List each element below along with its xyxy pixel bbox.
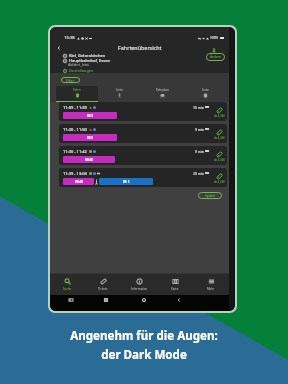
staticText: Linie [116,88,123,92]
button[interactable]: 11:30 - 11:42 [59,146,227,165]
staticText: RE 1 [123,180,130,184]
staticText: Abfahrt, Jetzt [68,62,89,67]
staticText: 11:20 - 11:50 [63,127,87,131]
staticText: 11:39 - 13:04 [63,171,87,175]
staticText: Fahrtenübersicht [118,44,162,51]
staticText: 9 min [195,127,204,131]
staticText: Angenehm für die Augen: [70,328,218,344]
staticText: 100% [210,36,219,40]
button[interactable]: Ändern [206,53,225,61]
button[interactable]: Einstellungen [63,68,94,73]
staticText: 15:38 [64,35,75,41]
staticText: Tickets [98,287,108,291]
button[interactable]: Karte [157,278,193,295]
staticText: 11:30 - 11:42 [63,149,87,153]
button[interactable]: 11:20 - 11:50 [59,124,227,143]
staticText: Information [131,287,148,291]
button[interactable]: Später [198,192,222,199]
button[interactable]: 11:09 - 11:39 [59,102,227,121]
staticText: ab 4,34€ [214,136,225,140]
staticText: RB40 [75,180,83,184]
button[interactable]: Linie [98,86,141,102]
staticText: 11:09 - 11:39 [63,105,87,109]
button[interactable]: Filter [61,77,80,83]
button[interactable]: Information [121,278,157,295]
staticText: der Dark Mode [101,347,187,363]
button[interactable]: Kiel, Gelsenkirchen [63,53,106,58]
staticText: ab 4,34€ [214,114,225,118]
button[interactable]: Hauptbahnhof, Essen [63,58,110,63]
staticText: Fahrt [73,88,81,92]
button[interactable]: Fahrplan [141,86,184,102]
button[interactable]: Suche [50,278,85,295]
staticText: ab 4,34€ [214,180,225,184]
staticText: 20 min [193,171,204,175]
staticText: Karte [171,287,179,291]
button[interactable]: Back [54,43,63,52]
button[interactable]: Fahrt [56,86,98,102]
button[interactable]: Liste [184,86,227,102]
staticText: ab 4,34€ [214,158,225,162]
staticText: Einstellungen [69,68,94,73]
staticText: Filter [66,78,75,83]
staticText: Fahrplan [156,88,169,92]
staticText: RE2 [87,114,93,118]
staticText: Kiel, Gelsenkirchen [69,53,106,58]
staticText: 16 min [193,105,204,109]
button[interactable]: Mehr [193,278,229,295]
staticText: RE2 [87,136,93,140]
staticText: RB40 [85,158,93,162]
staticText: Liste [202,88,209,92]
staticText: Suche [63,287,72,291]
staticText: Später [205,193,216,198]
button[interactable]: Download [210,46,217,53]
button[interactable]: 11:39 - 13:04 [59,168,227,187]
staticText: Mehr [207,287,215,291]
staticText: Ändern [210,55,222,59]
staticText: Hauptbahnhof, Essen [69,58,110,63]
button[interactable]: Tickets [85,278,121,295]
staticText: 9 min [195,149,204,153]
